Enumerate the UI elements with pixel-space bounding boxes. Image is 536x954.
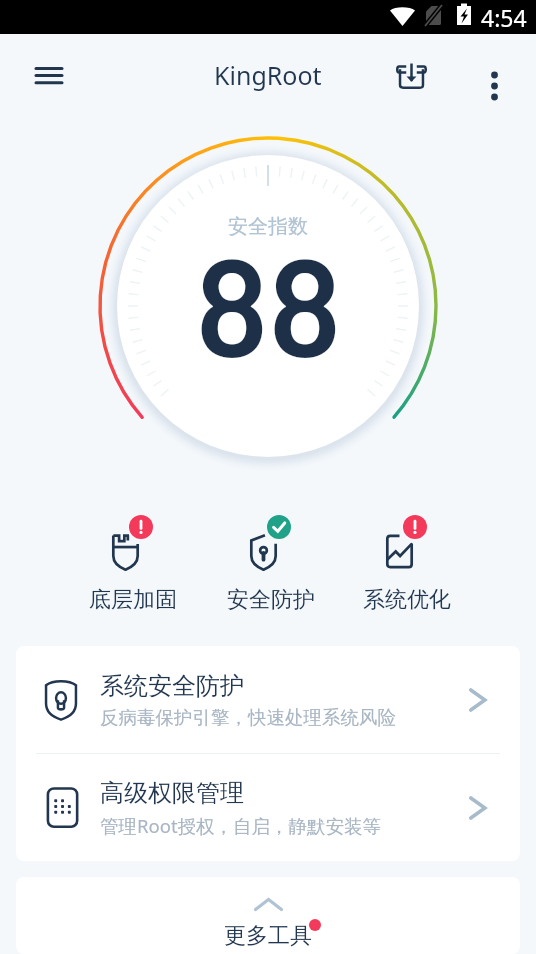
staticText: 4:54 bbox=[481, 2, 527, 33]
staticText: 高级权限管理 bbox=[100, 778, 244, 808]
staticText: 安全防护 bbox=[227, 586, 315, 614]
button[interactable]: Menu bbox=[18, 50, 80, 102]
staticText: 底层加固 bbox=[89, 586, 177, 614]
staticText: 管理Root授权，自启，静默安装等 bbox=[100, 813, 382, 838]
staticText: 88 bbox=[195, 220, 342, 384]
button[interactable]: 系统优化 bbox=[352, 513, 462, 614]
button[interactable]: 底层加固 bbox=[78, 513, 188, 614]
button[interactable]: 高级权限管理 bbox=[16, 754, 520, 861]
staticText: 系统安全防护 bbox=[100, 671, 244, 701]
staticText: 更多工具 bbox=[224, 922, 312, 950]
button[interactable]: 更多工具 bbox=[16, 877, 520, 954]
staticText: KingRoot bbox=[214, 58, 322, 92]
staticText: 系统优化 bbox=[363, 586, 451, 614]
staticText: 安全指数 bbox=[228, 214, 308, 239]
button[interactable]: 系统安全防护 bbox=[16, 646, 520, 753]
button[interactable]: 安全防护 bbox=[216, 513, 326, 614]
button[interactable]: More options bbox=[463, 42, 521, 110]
button[interactable]: Install bbox=[374, 42, 449, 110]
staticText: 反病毒保护引擎，快速处理系统风险 bbox=[100, 706, 396, 729]
